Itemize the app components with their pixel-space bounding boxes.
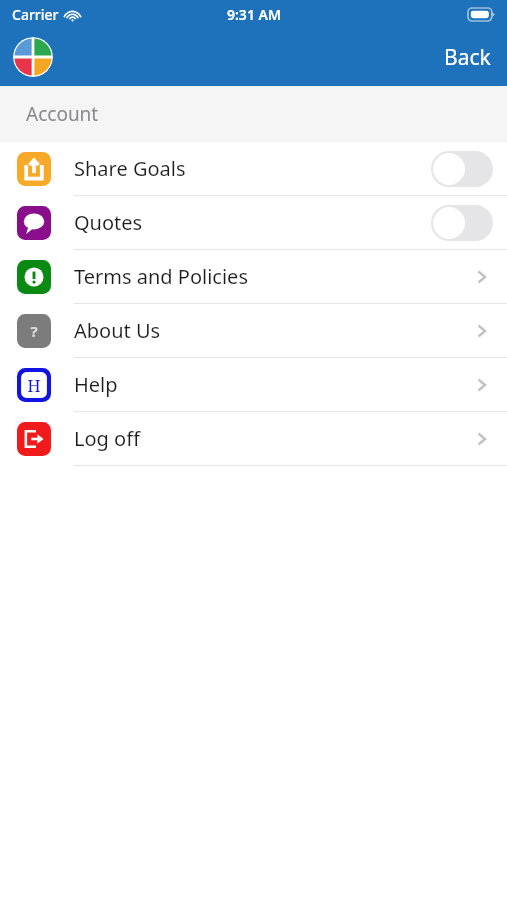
button[interactable]: H (0, 358, 507, 411)
button[interactable]: Toggle (431, 151, 493, 187)
button[interactable]: ? (0, 304, 507, 357)
staticText: Back (444, 43, 491, 72)
staticText: Help (74, 371, 118, 398)
button[interactable]: Log off (0, 412, 507, 465)
staticText: Quotes (74, 209, 143, 236)
staticText: Share Goals (74, 155, 186, 182)
staticText: About Us (74, 317, 161, 344)
staticText: Terms and Policies (74, 263, 248, 290)
staticText: Carrier (12, 5, 59, 24)
staticText: H (27, 374, 41, 397)
button[interactable]: Back (428, 35, 507, 80)
button[interactable]: Toggle (431, 205, 493, 241)
staticText: 9:31 AM (227, 5, 281, 24)
button[interactable]: Quotes (0, 196, 507, 249)
button[interactable]: App logo (13, 37, 53, 77)
staticText: Account (26, 101, 99, 127)
button[interactable]: Terms and Policies (0, 250, 507, 303)
staticText: Log off (74, 425, 140, 452)
staticText: ? (30, 321, 38, 341)
button[interactable]: Share Goals (0, 142, 507, 195)
